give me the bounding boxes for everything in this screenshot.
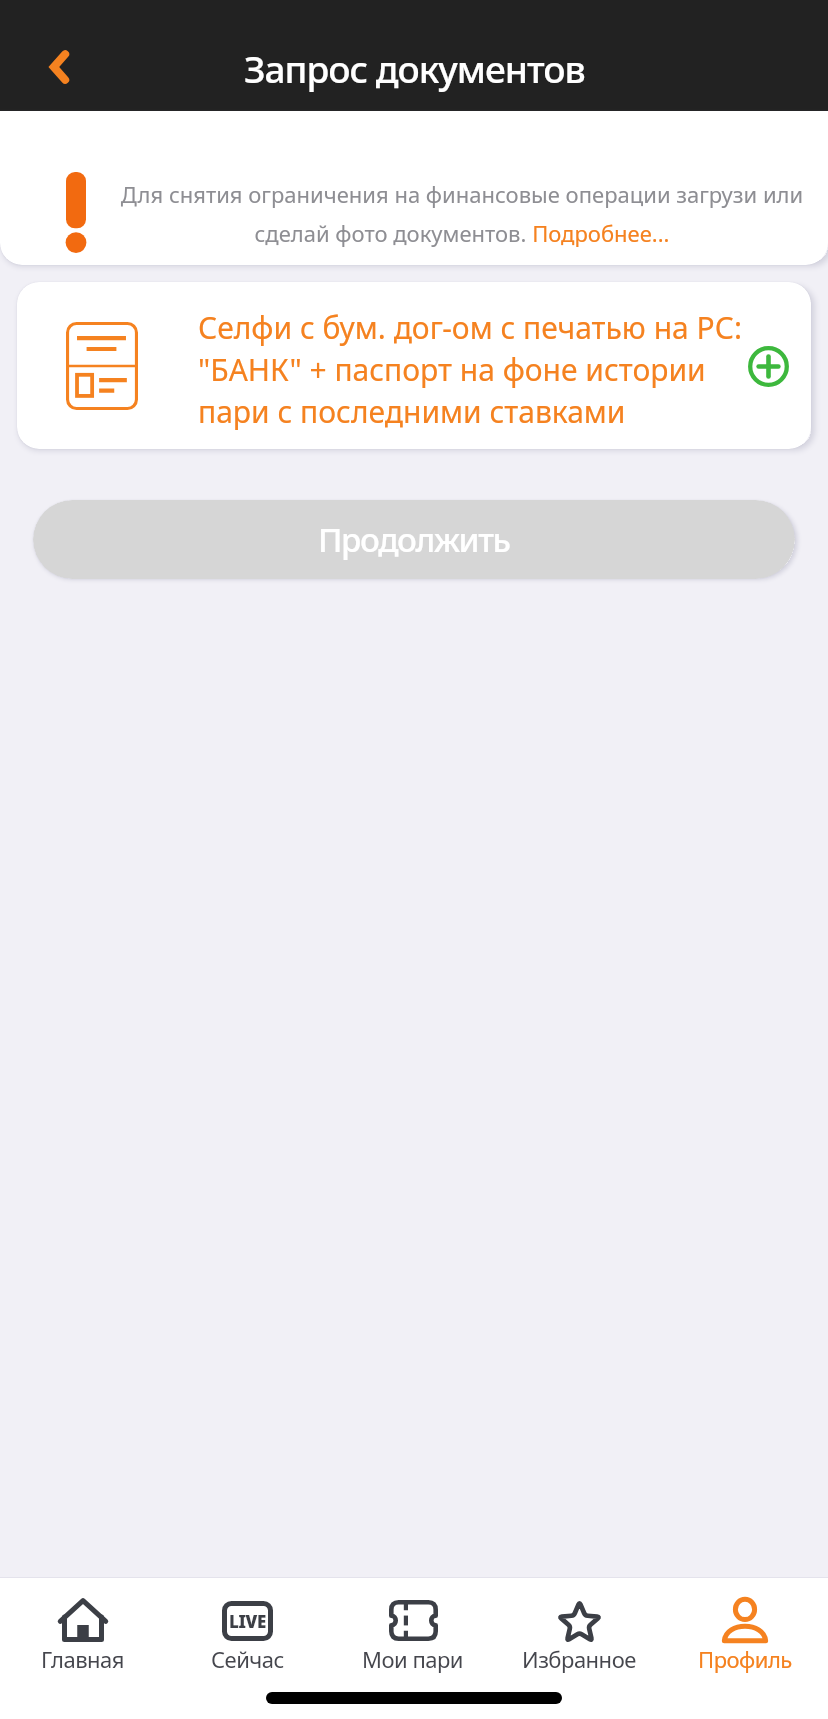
- button[interactable]: Избранное: [496, 1597, 662, 1697]
- staticText: Селфи с бум. дог-ом с печатью на РС: "БА…: [198, 307, 776, 432]
- button[interactable]: Селфи с бум. дог-ом с печатью на РС: "БА…: [17, 282, 811, 449]
- button[interactable]: Мои пари: [330, 1597, 496, 1697]
- button[interactable]: Add document: [737, 335, 799, 397]
- button[interactable]: Главная: [0, 1597, 165, 1697]
- staticText: Профиль: [698, 1644, 792, 1674]
- button[interactable]: Продолжить: [33, 500, 795, 579]
- staticText: Сейчас: [211, 1644, 284, 1674]
- staticText: Избранное: [522, 1644, 636, 1674]
- button[interactable]: Для снятия ограничения на финансовые опе…: [0, 111, 828, 265]
- staticText: Для снятия ограничения на финансовые опе…: [110, 179, 814, 248]
- staticText: Продолжить: [318, 517, 510, 562]
- staticText: LIVE: [229, 1610, 266, 1633]
- button[interactable]: Back: [26, 34, 92, 100]
- button[interactable]: Профиль: [662, 1597, 828, 1697]
- staticText: Мои пари: [362, 1644, 464, 1674]
- staticText: Главная: [41, 1644, 125, 1674]
- button[interactable]: LIVE: [165, 1597, 330, 1697]
- staticText: Запрос документов: [244, 43, 585, 93]
